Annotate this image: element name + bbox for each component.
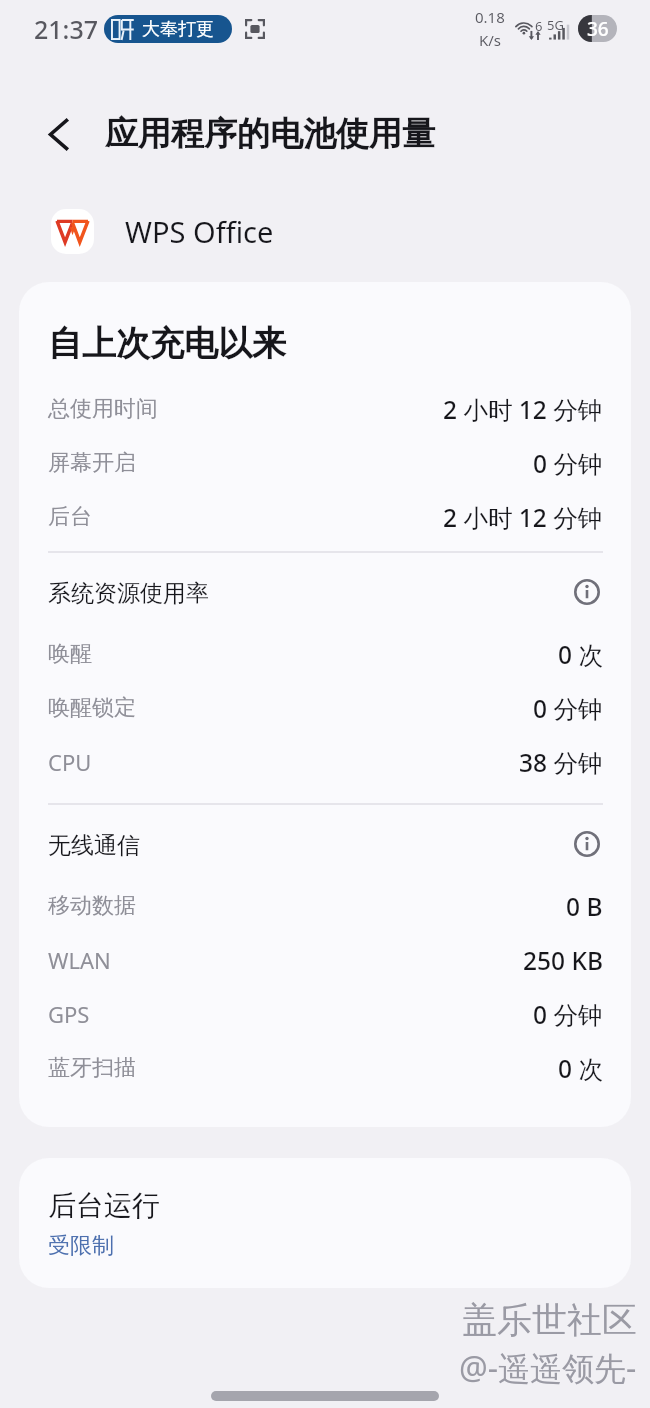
staticText: 0 分钟 — [533, 998, 603, 1031]
staticText: 2 小时 12 分钟 — [443, 501, 603, 534]
button[interactable]: 大奉打更 — [104, 15, 232, 43]
staticText: 后台 — [48, 503, 92, 531]
staticText: 0.18 — [475, 7, 505, 27]
other: Info — [573, 829, 601, 859]
staticText: 0 次 — [558, 638, 603, 671]
staticText: 移动数据 — [48, 892, 136, 920]
staticText: 250 KB — [523, 944, 603, 977]
staticText: 21:37 — [34, 12, 99, 46]
staticText: 0 分钟 — [533, 692, 603, 725]
staticText: 总使用时间 — [48, 395, 158, 423]
staticText: 唤醒锁定 — [48, 694, 136, 722]
button[interactable]: 后台运行 — [19, 1158, 631, 1288]
staticText: 自上次充电以来 — [48, 322, 286, 365]
staticText: WPS Office — [125, 212, 274, 251]
staticText: 无线通信 — [48, 831, 140, 860]
staticText: 系统资源使用率 — [48, 579, 209, 608]
staticText: WLAN — [48, 945, 111, 975]
staticText: @-遥遥领先- — [459, 1346, 637, 1390]
staticText: 2 小时 12 分钟 — [443, 393, 603, 426]
staticText: 大奉打更 — [142, 18, 214, 41]
staticText: 0 分钟 — [533, 447, 603, 480]
button[interactable]: 系统资源使用率 — [48, 553, 603, 627]
staticText: 后台运行 — [48, 1188, 160, 1223]
staticText: 屏幕开启 — [48, 449, 136, 477]
staticText: K/s — [479, 30, 502, 50]
staticText: 38 分钟 — [519, 746, 603, 779]
staticText: CPU — [48, 747, 92, 777]
staticText: 唤醒 — [48, 640, 92, 668]
button[interactable]: Back — [30, 106, 86, 162]
button[interactable]: 无线通信 — [48, 805, 603, 879]
staticText: 5G — [547, 16, 564, 34]
staticText: 受限制 — [48, 1232, 114, 1260]
staticText: 蓝牙扫描 — [48, 1054, 136, 1082]
staticText: 盖乐世社区 — [462, 1298, 637, 1342]
staticText: 36 — [587, 16, 609, 42]
other: Scan — [245, 19, 265, 39]
staticText: 应用程序的电池使用量 — [105, 113, 435, 155]
staticText: GPS — [48, 999, 90, 1029]
staticText: 6 — [535, 17, 543, 35]
other: Info — [573, 577, 601, 607]
staticText: 0 次 — [558, 1052, 603, 1085]
staticText: 0 B — [566, 890, 603, 923]
